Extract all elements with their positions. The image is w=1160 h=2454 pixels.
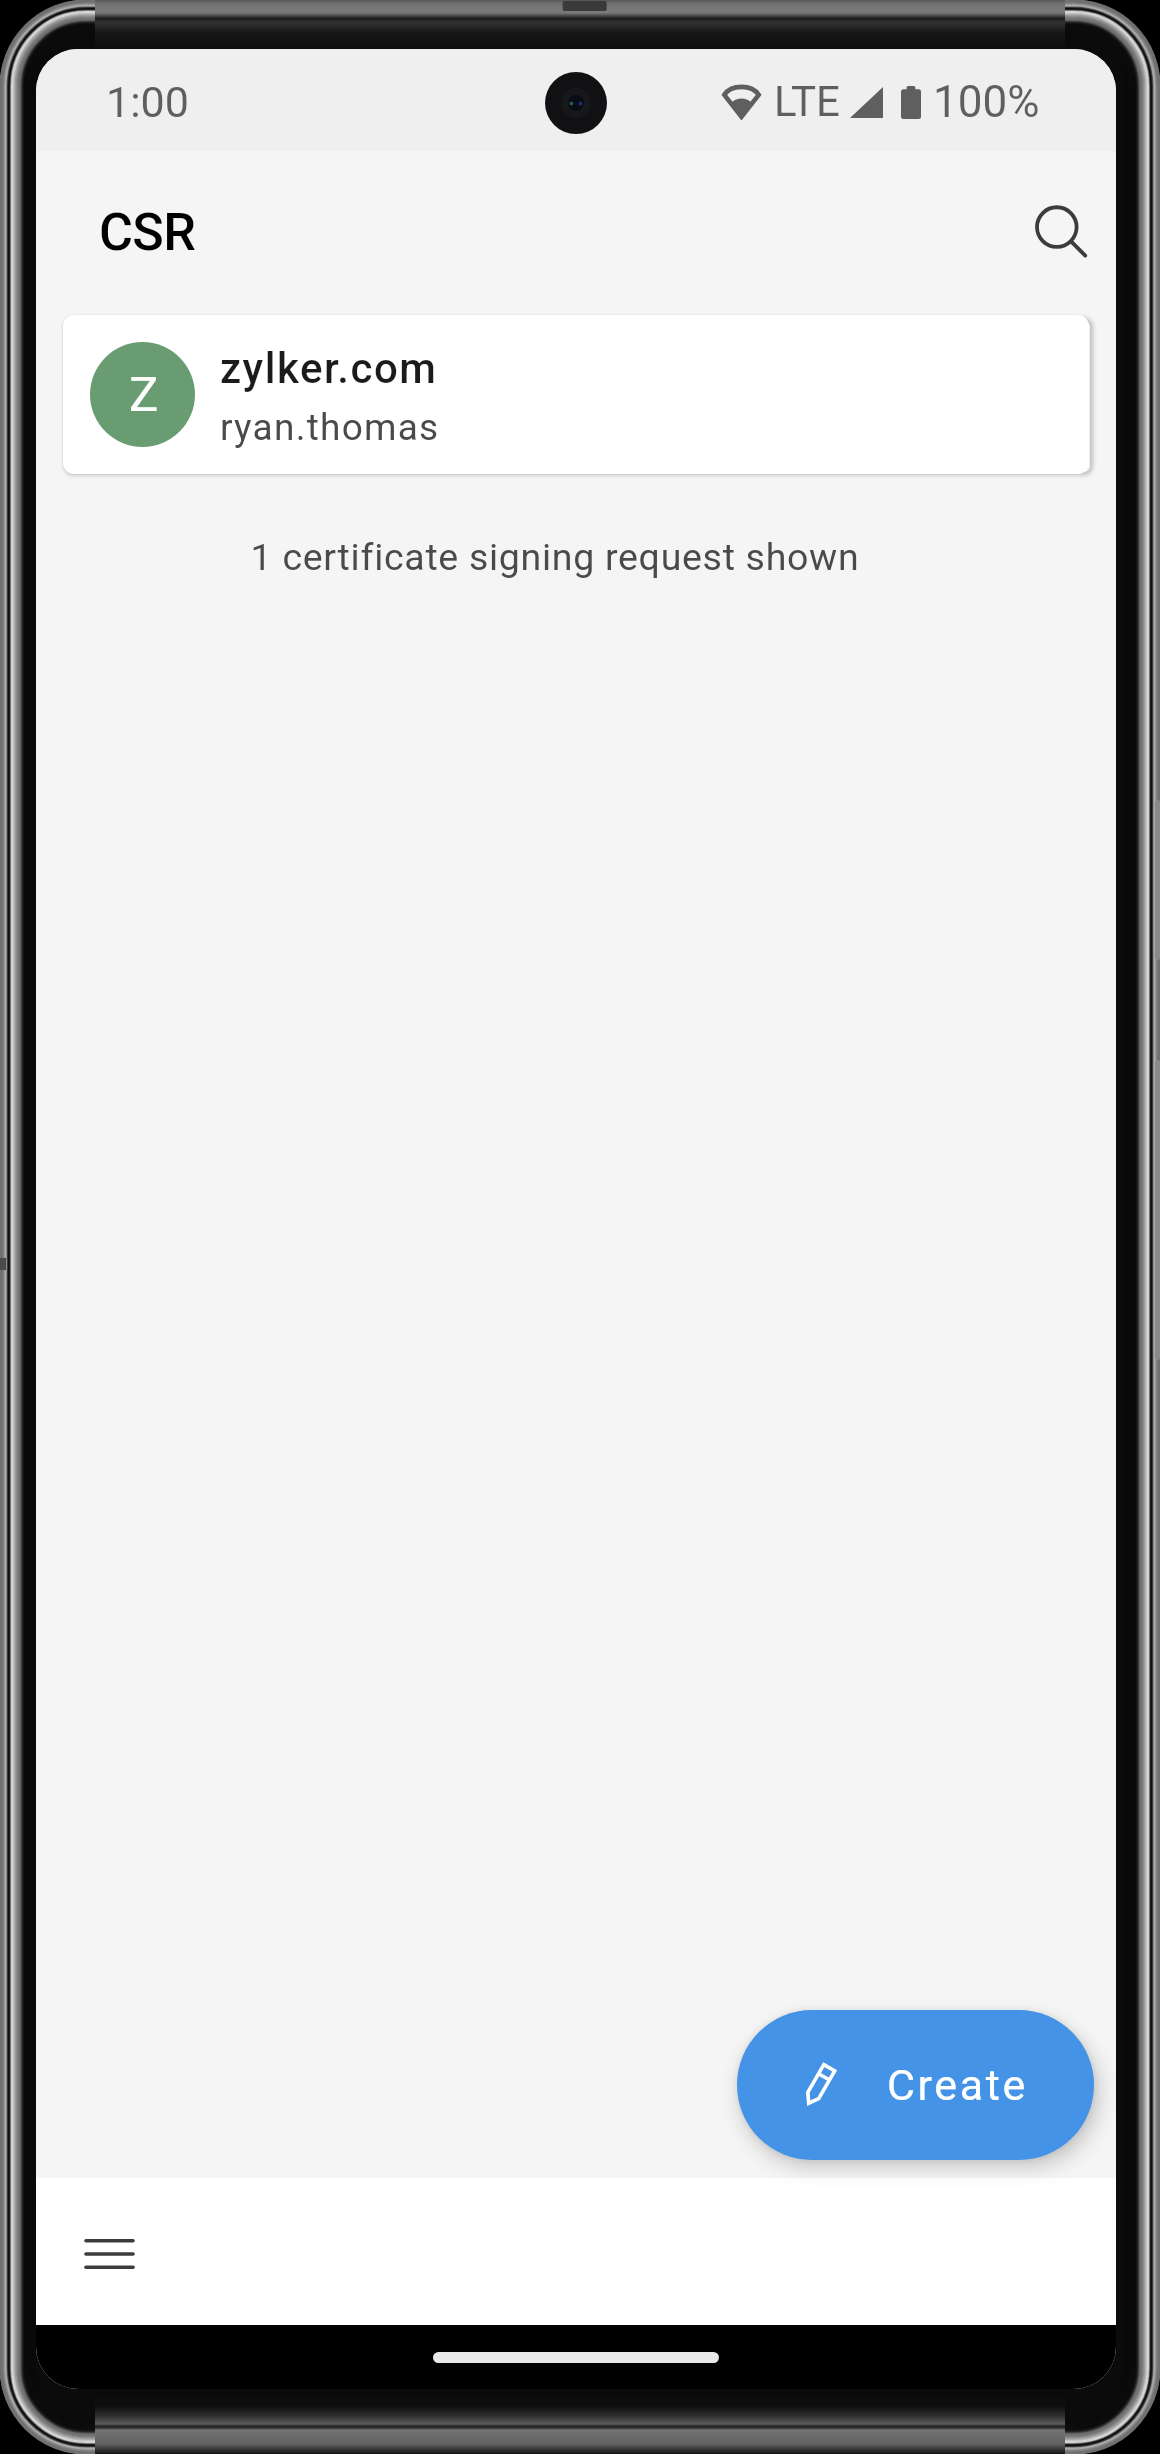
staticText: 1:00 [106, 77, 189, 127]
staticText: ryan.thomas [220, 406, 440, 449]
button[interactable]: Z [63, 315, 1089, 474]
staticText: 100% [933, 76, 1040, 128]
staticText: Z [129, 366, 159, 423]
staticText: Create [887, 2060, 1028, 2110]
staticText: 1 certificate signing request shown [36, 535, 1095, 579]
button[interactable]: Menu [54, 2199, 164, 2309]
staticText: LTE [774, 77, 840, 126]
staticText: CSR [99, 202, 196, 263]
button[interactable]: Search [1006, 178, 1116, 288]
staticText: zylker.com [220, 344, 438, 393]
button[interactable]: Create [737, 2010, 1094, 2160]
